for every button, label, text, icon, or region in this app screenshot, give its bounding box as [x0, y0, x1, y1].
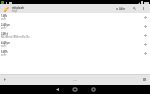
- staticText: 5.Wft: [1, 50, 8, 54]
- button[interactable]: Play: [2, 77, 7, 82]
- button[interactable]: 4.ASyn: [0, 40, 150, 49]
- button[interactable]: 2.ASyn: [0, 22, 150, 31]
- button[interactable]: Back: [48, 85, 66, 94]
- staticText: 0:00: [73, 79, 77, 82]
- other: Reorder: [143, 33, 148, 38]
- staticText: snFr: [1, 44, 7, 48]
- staticText: Mt3Mntn18MntnVlz33x: [1, 35, 30, 39]
- staticText: 2.ASyn: [1, 23, 10, 27]
- staticText: snFr: [1, 53, 7, 57]
- staticText: 4.ASyn: [1, 41, 10, 45]
- other: Reorder: [143, 51, 148, 56]
- button[interactable]: 3.Wrt: [0, 31, 150, 40]
- button[interactable]: 5.Wft: [0, 49, 150, 58]
- other: Reorder: [143, 42, 148, 47]
- staticText: Abbr: [119, 7, 126, 11]
- staticText: 3.Wrt: [1, 32, 8, 36]
- other: Reorder: [143, 24, 148, 29]
- button[interactable]: Search: [130, 4, 138, 13]
- button[interactable]: 1.Wk: [0, 13, 150, 22]
- staticText: 1.Wk: [1, 14, 8, 18]
- other: Reorder: [143, 15, 148, 20]
- staticText: snFr: [1, 17, 7, 21]
- button[interactable]: Recent apps: [84, 85, 102, 94]
- button[interactable]: Home: [66, 85, 84, 94]
- button[interactable]: More options: [139, 4, 147, 13]
- button[interactable]: Abbr: [116, 4, 126, 13]
- staticText: mltplswh: [12, 6, 25, 10]
- staticText: Srtp: [12, 9, 18, 13]
- staticText: snFr: [1, 26, 7, 30]
